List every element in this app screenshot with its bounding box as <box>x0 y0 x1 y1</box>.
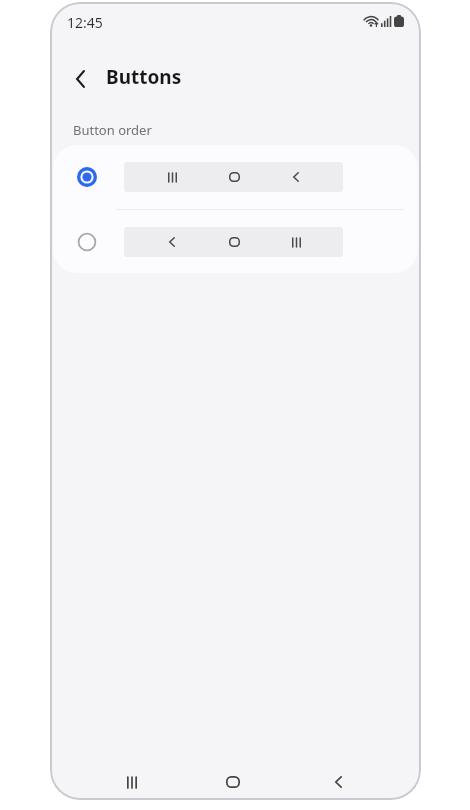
staticText: Buttons <box>106 64 182 90</box>
button[interactable] <box>213 762 253 800</box>
staticText: Button order <box>73 121 152 139</box>
button[interactable] <box>112 762 152 800</box>
staticText: 12:45 <box>67 13 103 32</box>
button[interactable] <box>66 62 95 95</box>
button[interactable] <box>77 232 97 252</box>
button[interactable] <box>318 762 358 800</box>
button[interactable] <box>53 210 418 273</box>
button[interactable] <box>53 145 418 209</box>
button[interactable] <box>77 167 97 187</box>
